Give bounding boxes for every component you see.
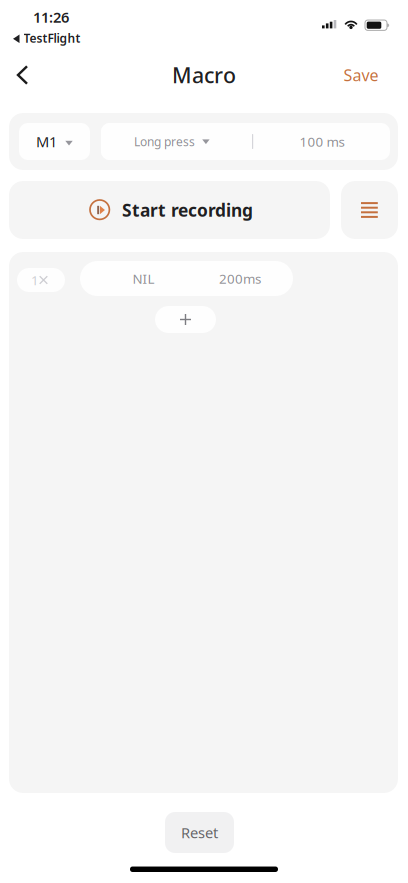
button[interactable]: Start recording	[9, 181, 330, 239]
staticText: Start recording	[122, 198, 253, 221]
button[interactable]: 100 ms	[253, 123, 390, 160]
staticText: Save	[343, 64, 378, 86]
staticText: NIL	[132, 270, 154, 287]
staticText: 200ms	[219, 270, 261, 287]
button[interactable]: Long press	[101, 123, 252, 160]
button[interactable]: Reset	[165, 812, 234, 853]
staticText: 11:26	[33, 7, 69, 27]
staticText: 1	[31, 271, 39, 289]
button[interactable]: Add step	[155, 306, 216, 333]
staticText: TestFlight	[23, 30, 80, 46]
button[interactable]: M1	[19, 123, 90, 160]
button[interactable]: Macro options	[341, 181, 398, 239]
staticText: Reset	[181, 823, 218, 842]
staticText: M1	[36, 132, 57, 151]
staticText: Long press	[134, 133, 195, 149]
button[interactable]: Back	[0, 53, 44, 97]
button[interactable]: Step NIL 200ms	[80, 261, 293, 296]
staticText: 100 ms	[299, 133, 344, 150]
button[interactable]: Repeat count	[17, 268, 65, 292]
staticText: Macro	[172, 61, 236, 89]
button[interactable]: Save	[325, 53, 397, 97]
